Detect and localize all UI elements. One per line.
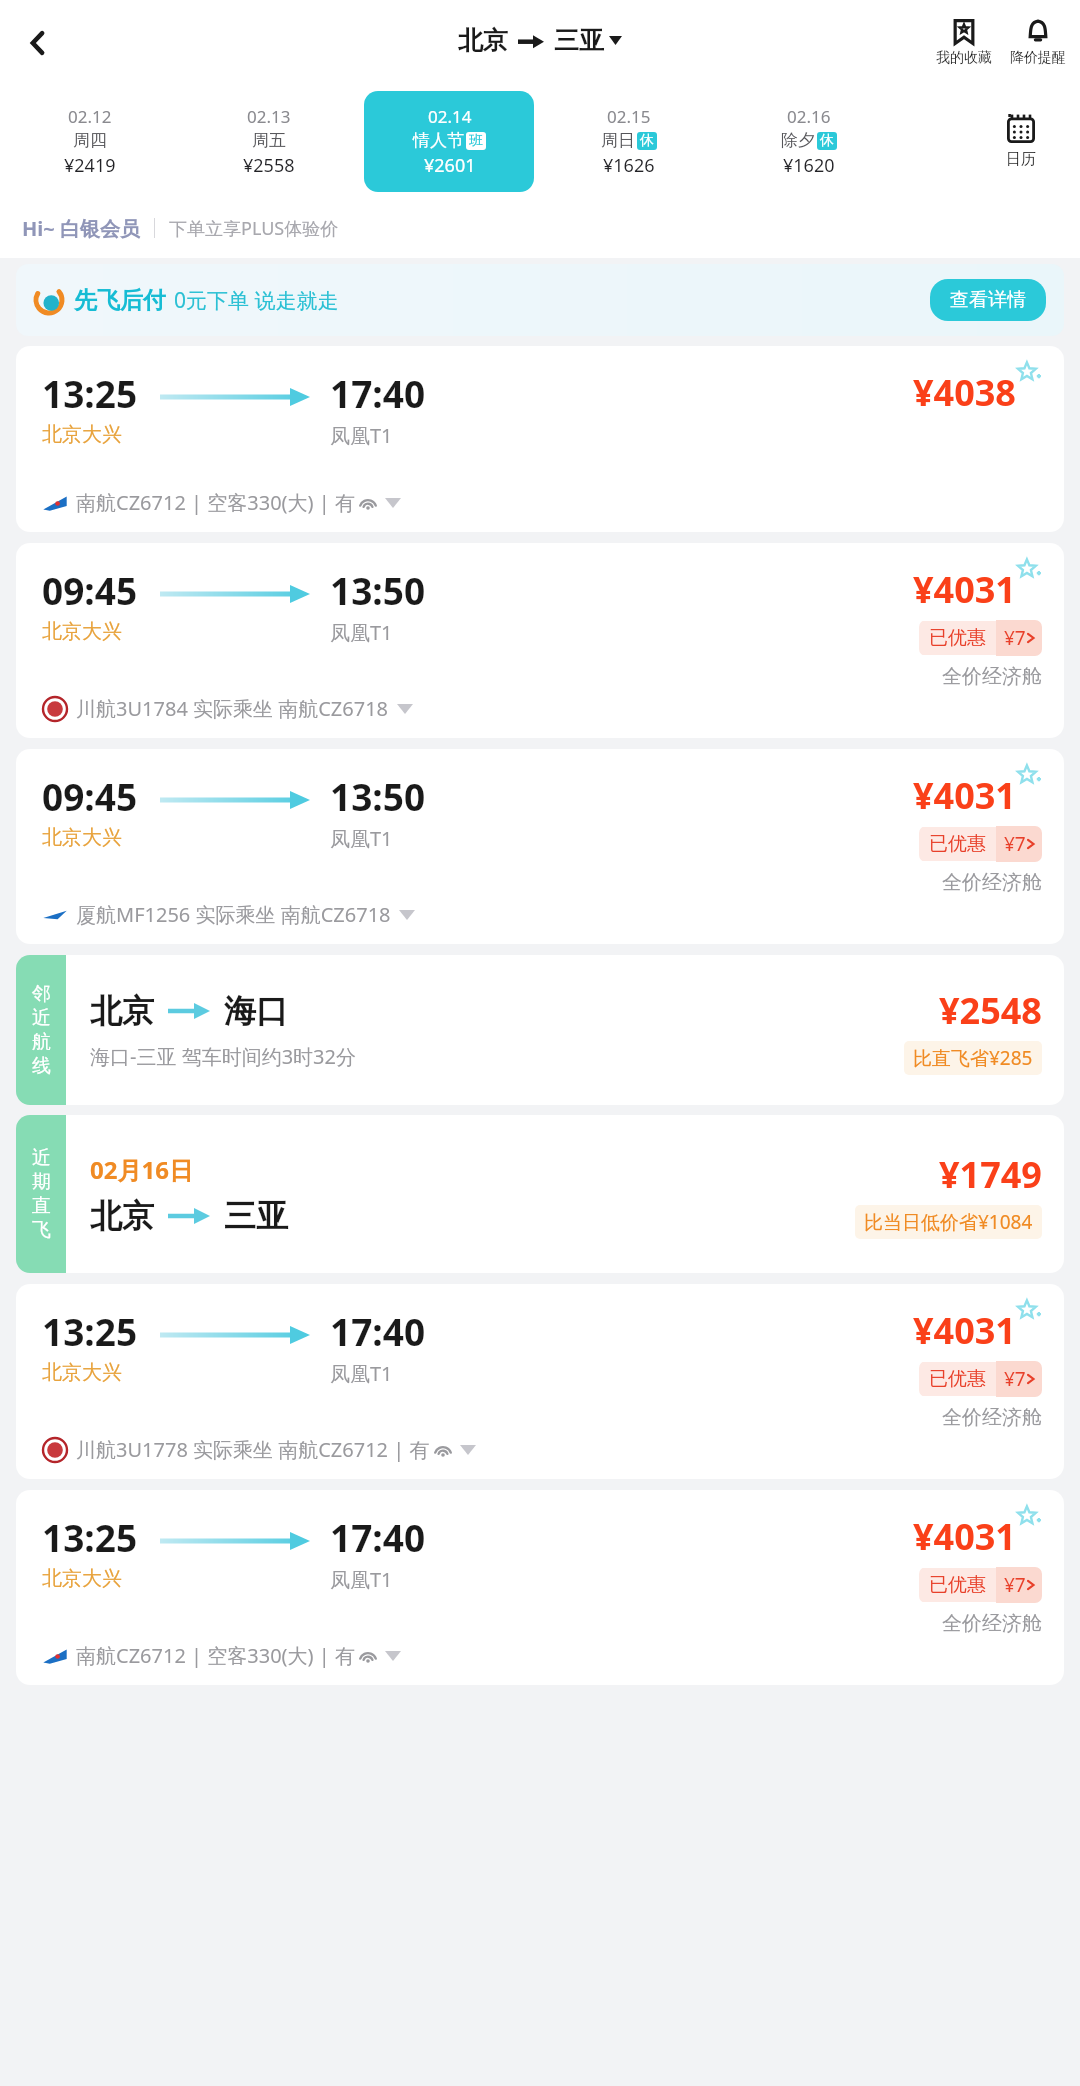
- staticText: ¥1626: [603, 153, 655, 178]
- staticText: 02月16日: [90, 1153, 193, 1186]
- staticText: 海口: [224, 991, 288, 1031]
- staticText: 13:50: [330, 771, 426, 821]
- staticText: ¥4031: [913, 1306, 1016, 1355]
- staticText: 下单立享PLUS体验价: [169, 216, 339, 241]
- button[interactable]: 近 期 直 飞: [16, 1115, 1064, 1273]
- staticText: 北京: [90, 991, 154, 1031]
- staticText: 我的收藏: [936, 49, 992, 67]
- staticText: 凤凰T1: [330, 1360, 393, 1387]
- button[interactable]: 降价提醒: [1008, 19, 1068, 67]
- staticText: 除夕: [781, 130, 815, 151]
- staticText: 09:45: [42, 565, 138, 615]
- button[interactable]: 13:25: [16, 346, 1064, 532]
- staticText: 北京大兴: [42, 1360, 122, 1385]
- staticText: 北京大兴: [42, 1566, 122, 1591]
- staticText: ¥7: [1004, 1366, 1026, 1392]
- button[interactable]: 日历: [962, 85, 1080, 198]
- staticText: 北京大兴: [42, 619, 122, 644]
- staticText: 凤凰T1: [330, 619, 393, 646]
- staticText: 02.16: [787, 105, 831, 128]
- staticText: 北京大兴: [42, 825, 122, 850]
- staticText: 先飞后付: [74, 286, 166, 315]
- button[interactable]: 已优惠: [919, 1567, 1042, 1603]
- staticText: 17:40: [330, 1512, 426, 1562]
- staticText: 全价经济舱: [942, 870, 1042, 895]
- staticText: 全价经济舱: [942, 1405, 1042, 1430]
- staticText: 13:25: [42, 368, 138, 418]
- button[interactable]: 02.12: [5, 91, 174, 192]
- button[interactable]: 02.14: [364, 91, 534, 192]
- button[interactable]: 13:25: [16, 1284, 1064, 1479]
- staticText: ¥7: [1004, 625, 1026, 651]
- staticText: 已优惠: [929, 626, 986, 650]
- staticText: 全价经济舱: [942, 1611, 1042, 1636]
- staticText: 凤凰T1: [330, 825, 393, 852]
- staticText: 三亚: [554, 25, 604, 56]
- staticText: 周五: [252, 130, 286, 151]
- staticText: ¥1749: [939, 1150, 1042, 1199]
- button[interactable]: 09:45: [16, 749, 1064, 944]
- staticText: ¥4038: [913, 368, 1016, 417]
- staticText: ¥4031: [913, 771, 1016, 820]
- staticText: 休: [640, 132, 654, 150]
- staticText: ¥2601: [424, 153, 476, 178]
- staticText: 0元下单 说走就走: [174, 286, 339, 315]
- button[interactable]: Hi~ 白银会员: [22, 198, 1080, 258]
- staticText: 情人节: [413, 130, 464, 151]
- staticText: 海口-三亚 驾车时间约3时32分: [90, 1043, 356, 1070]
- staticText: 北京: [458, 25, 508, 56]
- staticText: 周四: [73, 130, 107, 151]
- staticText: 17:40: [330, 1306, 426, 1356]
- staticText: 川航3U1784 实际乘坐 南航CZ6718: [76, 695, 389, 722]
- staticText: 北京: [90, 1196, 154, 1236]
- staticText: 已优惠: [929, 1367, 986, 1391]
- staticText: 13:25: [42, 1306, 138, 1356]
- staticText: 川航3U1778 实际乘坐 南航CZ6712 | 有: [76, 1436, 430, 1463]
- button[interactable]: 我的收藏: [934, 19, 994, 67]
- staticText: ¥4031: [913, 565, 1016, 614]
- staticText: 02.15: [607, 105, 651, 128]
- button[interactable]: Back: [10, 15, 66, 71]
- staticText: 休: [820, 132, 834, 150]
- staticText: ¥1620: [783, 153, 835, 178]
- staticText: 02.12: [68, 105, 112, 128]
- staticText: ¥4031: [913, 1512, 1016, 1561]
- staticText: 南航CZ6712 | 空客330(大) | 有: [76, 1642, 355, 1669]
- staticText: ¥7: [1004, 1572, 1026, 1598]
- staticText: 班: [469, 132, 483, 150]
- staticText: ¥2419: [64, 153, 116, 178]
- staticText: 凤凰T1: [330, 422, 393, 449]
- button[interactable]: 02.13: [184, 91, 354, 192]
- button[interactable]: 北京: [458, 25, 622, 56]
- staticText: 17:40: [330, 368, 426, 418]
- staticText: ¥7: [1004, 831, 1026, 857]
- staticText: 比当日低价省¥1084: [864, 1209, 1033, 1235]
- staticText: 比直飞省¥285: [913, 1045, 1033, 1071]
- staticText: 09:45: [42, 771, 138, 821]
- staticText: 13:50: [330, 565, 426, 615]
- button[interactable]: 先飞后付: [34, 264, 1046, 336]
- button[interactable]: 查看详情: [950, 288, 1026, 312]
- staticText: 已优惠: [929, 1573, 986, 1597]
- staticText: 查看详情: [950, 288, 1026, 312]
- button[interactable]: 02.16: [724, 91, 894, 192]
- button[interactable]: 13:25: [16, 1490, 1064, 1685]
- staticText: ¥2558: [243, 153, 295, 178]
- staticText: 日历: [1006, 150, 1036, 169]
- staticText: 02.13: [247, 105, 291, 128]
- staticText: 南航CZ6712 | 空客330(大) | 有: [76, 489, 355, 516]
- button[interactable]: 已优惠: [919, 620, 1042, 656]
- staticText: 近 期 直 飞: [32, 1146, 51, 1242]
- button[interactable]: 邻 近 航 线: [16, 955, 1064, 1105]
- button[interactable]: 09:45: [16, 543, 1064, 738]
- staticText: 凤凰T1: [330, 1566, 393, 1593]
- button[interactable]: 02.15: [544, 91, 714, 192]
- button[interactable]: 已优惠: [919, 826, 1042, 862]
- staticText: 13:25: [42, 1512, 138, 1562]
- staticText: 北京大兴: [42, 422, 122, 447]
- staticText: Hi~ 白银会员: [22, 215, 140, 242]
- staticText: 三亚: [224, 1196, 288, 1236]
- staticText: 邻 近 航 线: [32, 982, 51, 1078]
- staticText: ¥2548: [939, 986, 1042, 1035]
- button[interactable]: 已优惠: [919, 1361, 1042, 1397]
